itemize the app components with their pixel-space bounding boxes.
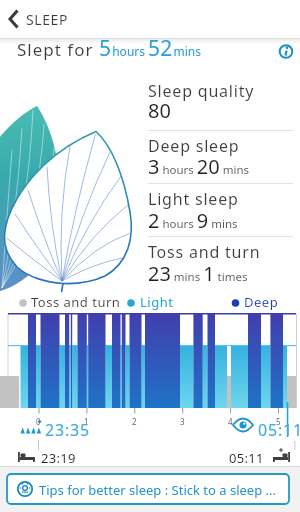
staticText: Sleep quality — [148, 80, 255, 102]
staticText: 80 — [148, 97, 171, 124]
staticText: 05:11 — [258, 419, 300, 441]
button[interactable] — [274, 39, 300, 65]
staticText: Light sleep — [148, 188, 239, 210]
staticText: 23:35 — [45, 419, 90, 441]
staticText: Toss and turn — [148, 241, 261, 263]
staticText: 4 — [228, 416, 233, 427]
staticText: 2 hours 9 mins — [148, 207, 238, 234]
staticText: 2 — [132, 416, 137, 427]
staticText: 23 mins 1 times — [148, 260, 248, 287]
staticText: 05:11 — [229, 449, 264, 467]
staticText: Slept for 5 hours 52 mins — [17, 34, 201, 63]
staticText: 3 hours 20 mins — [148, 153, 250, 180]
staticText: 0 — [36, 416, 41, 427]
staticText: Deep — [244, 293, 279, 311]
button[interactable] — [7, 474, 289, 504]
staticText: SLEEP — [26, 10, 69, 29]
staticText: 3 — [180, 416, 185, 427]
staticText: 23:19 — [41, 449, 76, 467]
staticText: Deep sleep — [148, 135, 240, 157]
button[interactable] — [0, 0, 80, 38]
staticText: Tips for better sleep : Stick to a sleep… — [39, 481, 276, 499]
staticText: 1 — [84, 416, 89, 427]
staticText: Toss and turn — [31, 293, 121, 311]
staticText: 5 — [276, 416, 281, 427]
staticText: Light — [140, 293, 174, 311]
